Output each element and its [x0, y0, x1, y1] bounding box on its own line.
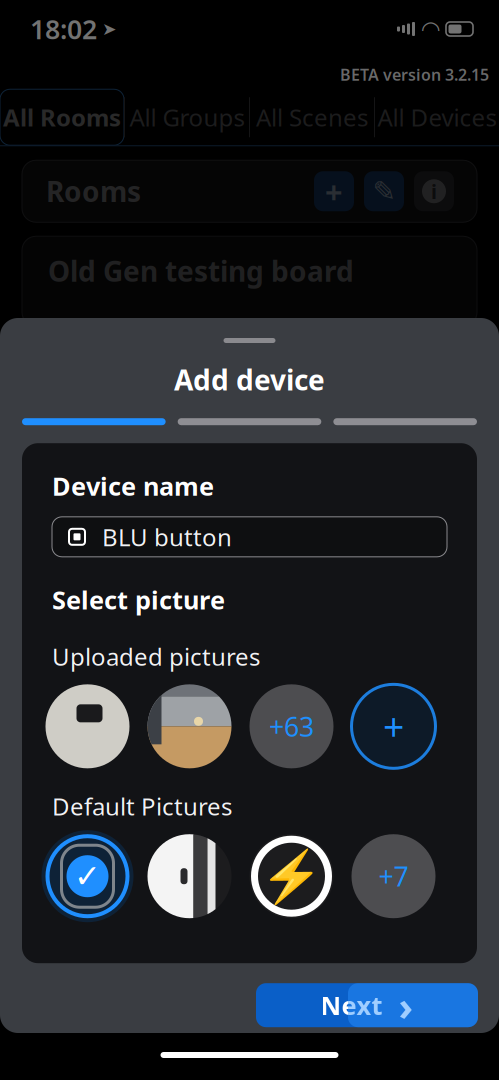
staticText: All Groups [129, 101, 244, 133]
staticText: ✓ [74, 858, 101, 894]
staticText: BLU button [102, 521, 232, 553]
button[interactable]: Edit rooms [364, 171, 404, 211]
staticText: All Rooms [3, 101, 121, 133]
button[interactable]: All Devices [375, 89, 499, 145]
staticText: Add device [174, 361, 325, 398]
staticText: › [398, 979, 413, 1032]
button[interactable]: Power icon [249, 834, 333, 918]
staticText: ✎ [372, 175, 395, 207]
button[interactable]: Upload picture [351, 684, 435, 768]
button[interactable]: Room photo [147, 684, 231, 768]
staticText: ⚡ [260, 847, 323, 905]
staticText: All Devices [377, 101, 496, 133]
staticText: Next [320, 988, 382, 1022]
button[interactable]: BLU button [52, 517, 447, 557]
staticText: +63 [269, 709, 314, 744]
staticText: + [383, 701, 404, 751]
staticText: +7 [378, 858, 408, 894]
staticText: All Scenes [256, 101, 368, 133]
button[interactable]: All Rooms [0, 89, 124, 145]
staticText: i [431, 178, 437, 205]
button[interactable]: Next [256, 983, 478, 1027]
button[interactable]: All Groups [125, 89, 249, 145]
staticText: Uploaded pictures [52, 640, 260, 672]
staticText: Select picture [52, 583, 225, 616]
button[interactable]: Door icon [147, 834, 231, 918]
staticText: 18:02 [30, 11, 97, 47]
staticText: ➤ [102, 19, 117, 39]
button[interactable]: +63 [249, 684, 333, 768]
staticText: Device name [52, 469, 214, 503]
staticText: BETA version 3.2.15 [340, 64, 489, 85]
staticText: Default Pictures [52, 790, 232, 822]
staticText: Old Gen testing board [48, 252, 354, 289]
staticText: ◠ [422, 16, 439, 42]
button[interactable]: Button icon, selected [45, 834, 129, 918]
button[interactable]: +7 [351, 834, 435, 918]
staticText: + [325, 171, 343, 212]
staticText: Rooms [46, 173, 141, 210]
button[interactable]: All Scenes [250, 89, 374, 145]
button[interactable]: Device photo [45, 684, 129, 768]
button[interactable]: Add room [314, 171, 354, 211]
